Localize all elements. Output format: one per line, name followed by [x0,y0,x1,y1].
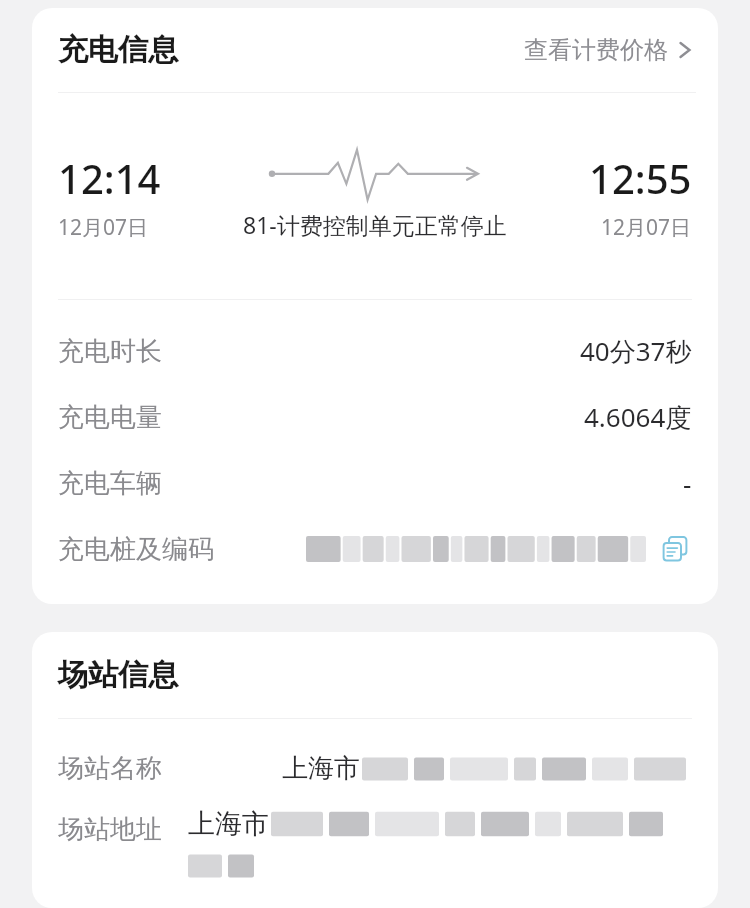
staticText: 场站地址 [58,813,162,846]
button[interactable]: 查看计费价格 [520,29,696,71]
button[interactable]: 复制编码 [658,532,692,566]
staticText: 充电信息 [58,31,178,69]
staticText: 上海市 [282,752,360,785]
staticText: 12:14 [58,151,161,205]
staticText: 上海市 [188,807,269,841]
staticText: 充电桩及编码 [58,533,214,566]
staticText: - [683,466,692,501]
button[interactable]: 充电车辆 [32,450,718,516]
button[interactable]: 充电桩及编码 [32,516,718,582]
staticText: 12:55 [589,151,692,205]
staticText: 场站名称 [58,752,162,785]
staticText: 充电电量 [58,401,162,434]
button[interactable]: 充电时长 [32,318,718,384]
staticText: 查看计费价格 [524,35,668,65]
staticText: 81-计费控制单元正常停止 [243,209,507,240]
staticText: 场站信息 [58,656,178,694]
staticText: 40分37秒 [580,333,692,369]
staticText: 12月07日 [601,213,692,242]
button[interactable]: 场站名称 [32,737,718,799]
staticText: 充电时长 [58,335,162,368]
button[interactable]: 充电电量 [32,384,718,450]
button[interactable]: 场站地址 [32,799,718,889]
staticText: 12月07日 [58,213,149,242]
staticText: 充电车辆 [58,467,162,500]
staticText: 4.6064度 [584,399,692,435]
